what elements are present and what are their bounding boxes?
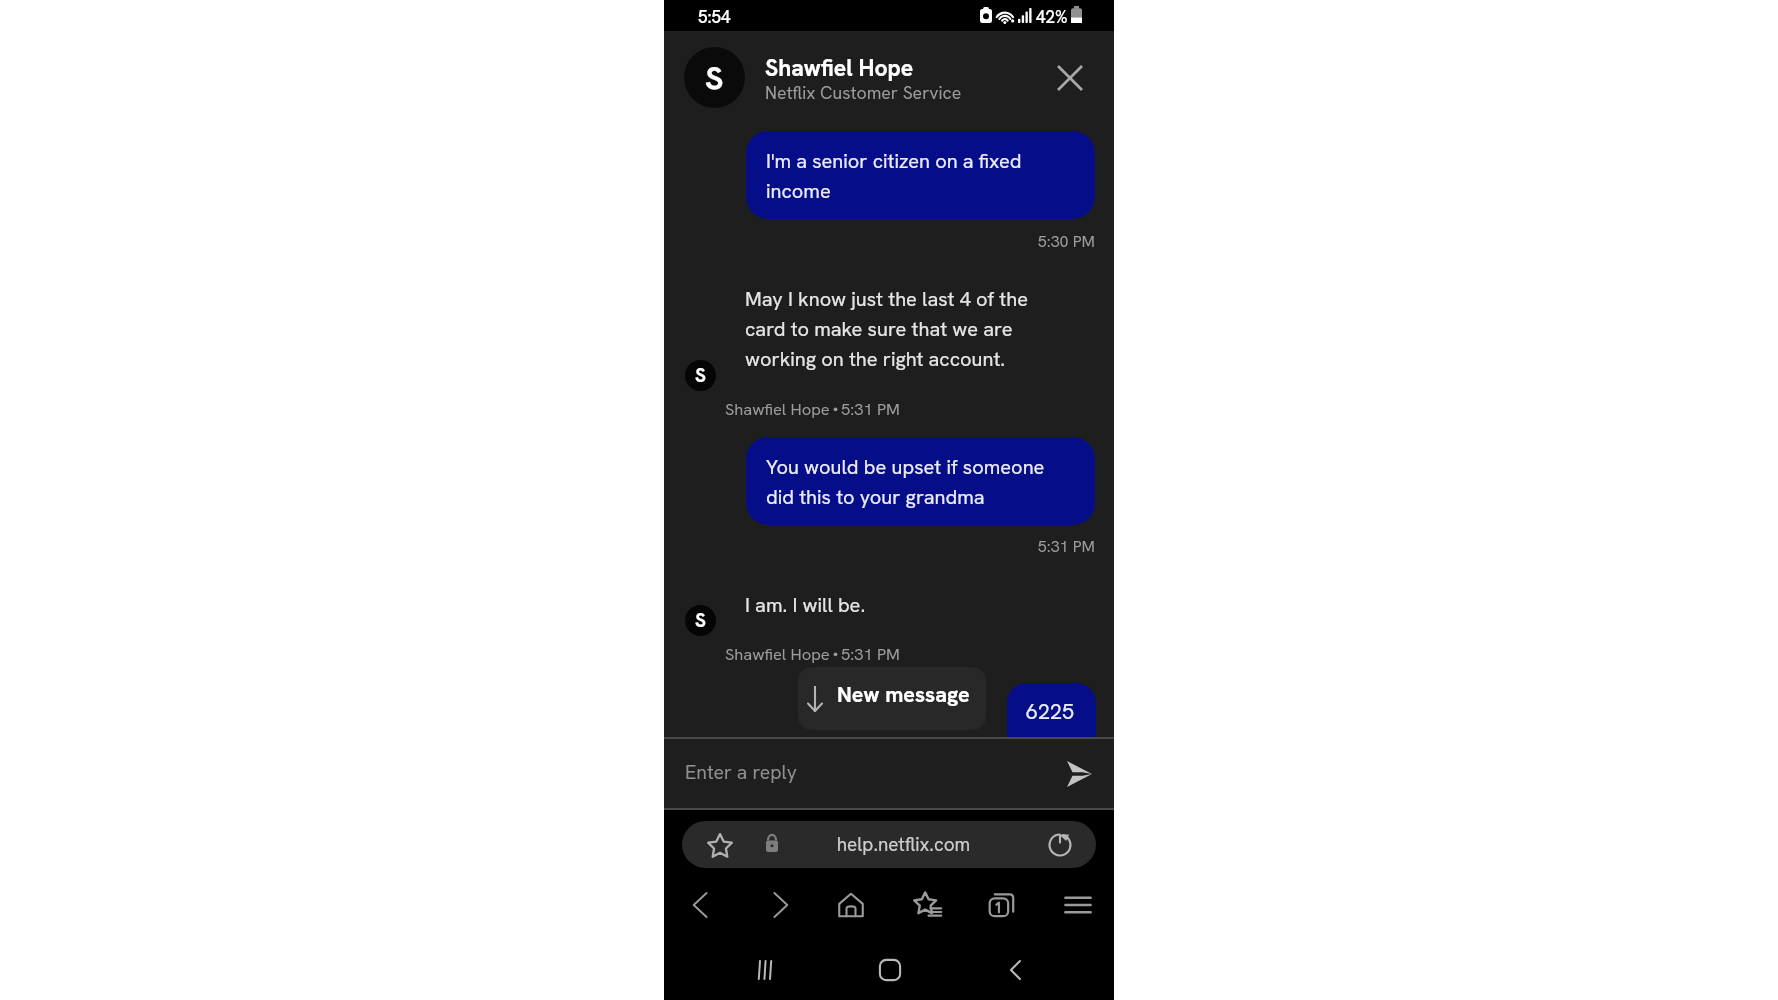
staticText: 5:31 PM [664,536,1095,557]
button[interactable]: Tabs [980,883,1024,927]
button[interactable]: Back [679,883,723,927]
button[interactable]: New message [798,667,986,730]
staticText: 5:31 PM [841,398,900,419]
button[interactable]: Menu [1056,883,1100,927]
staticText: 5:31 PM [841,643,900,664]
button[interactable]: Bookmark this page [700,825,740,865]
staticText: help.netflix.com [741,832,1066,857]
staticText: Shawfiel Hope [765,53,914,83]
staticText: Shawfiel Hope [725,643,830,664]
button[interactable]: You would be upset if someone did this t… [746,437,1095,525]
button[interactable]: Close chat [1047,55,1093,101]
button[interactable]: Home [829,883,873,927]
staticText: S [695,608,706,633]
staticText: 42% [1036,6,1068,28]
staticText: Enter a reply [685,760,797,785]
button[interactable]: Send [1057,752,1101,796]
button[interactable]: Home screen [868,948,912,992]
staticText: S [705,57,724,99]
staticText: 5:54 [698,6,731,28]
staticText: I'm a senior citizen on a fixed income [766,148,1076,204]
staticText: New message [837,680,970,708]
button[interactable]: 6225 [1007,683,1096,738]
staticText: 5:30 PM [664,231,1095,252]
button[interactable]: Back [994,948,1038,992]
staticText: Shawfiel Hope [725,398,830,419]
button[interactable]: Bookmarks [906,883,950,927]
staticText: S [695,363,706,388]
staticText: Netflix Customer Service [765,81,962,104]
button[interactable]: Recent apps [743,948,787,992]
staticText: May I know just the last 4 of the card t… [745,286,1040,372]
button[interactable]: Bookmark this page [682,821,1096,868]
staticText: I am. I will be. [745,592,866,618]
button[interactable]: Forward [758,883,802,927]
staticText: 6225 [1026,697,1075,725]
staticText: You would be upset if someone did this t… [766,454,1076,510]
button[interactable]: Reload page [1038,823,1082,867]
button[interactable]: I'm a senior citizen on a fixed income [746,131,1095,219]
